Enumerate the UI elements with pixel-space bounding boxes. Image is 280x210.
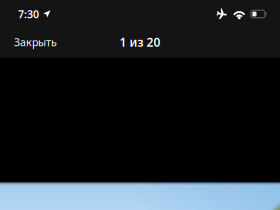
staticText: 1 из 20 bbox=[119, 34, 160, 50]
staticText: Закрыть bbox=[14, 35, 57, 49]
button[interactable]: Закрыть bbox=[0, 28, 71, 56]
staticText: 7:30 bbox=[18, 7, 39, 21]
